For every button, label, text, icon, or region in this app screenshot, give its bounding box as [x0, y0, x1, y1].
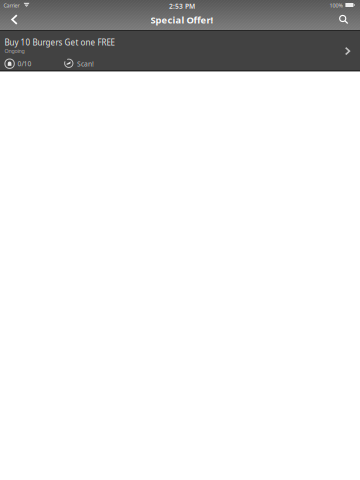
staticText: 2:53 PM	[169, 2, 195, 11]
staticText: 0/10	[18, 59, 32, 68]
button[interactable]: Search	[332, 9, 356, 31]
staticText: Special Offer!	[151, 14, 214, 26]
staticText: Scan!	[77, 60, 94, 68]
button[interactable]: Buy 10 Burgers Get one FREE	[0, 31, 360, 70]
button[interactable]: Back	[2, 9, 26, 31]
staticText: Ongoing	[5, 47, 25, 54]
staticText: Carrier	[3, 2, 19, 9]
staticText: 100%	[329, 2, 342, 9]
staticText: Buy 10 Burgers Get one FREE	[5, 37, 115, 48]
